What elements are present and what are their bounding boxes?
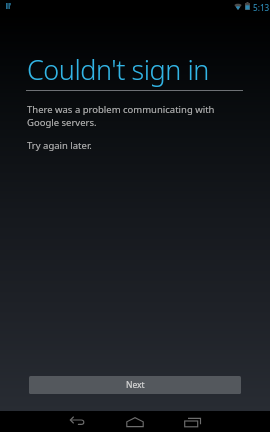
- button[interactable]: Next: [29, 376, 241, 394]
- staticText: Try again later.: [27, 139, 92, 152]
- staticText: Next: [126, 379, 145, 391]
- button[interactable]: Home: [115, 411, 155, 432]
- staticText: Couldn't sign in: [27, 51, 209, 88]
- button[interactable]: Recent apps: [173, 411, 213, 432]
- staticText: There was a problem communicating with G…: [27, 103, 215, 129]
- button[interactable]: Back: [57, 411, 97, 432]
- staticText: 5:13: [253, 2, 270, 13]
